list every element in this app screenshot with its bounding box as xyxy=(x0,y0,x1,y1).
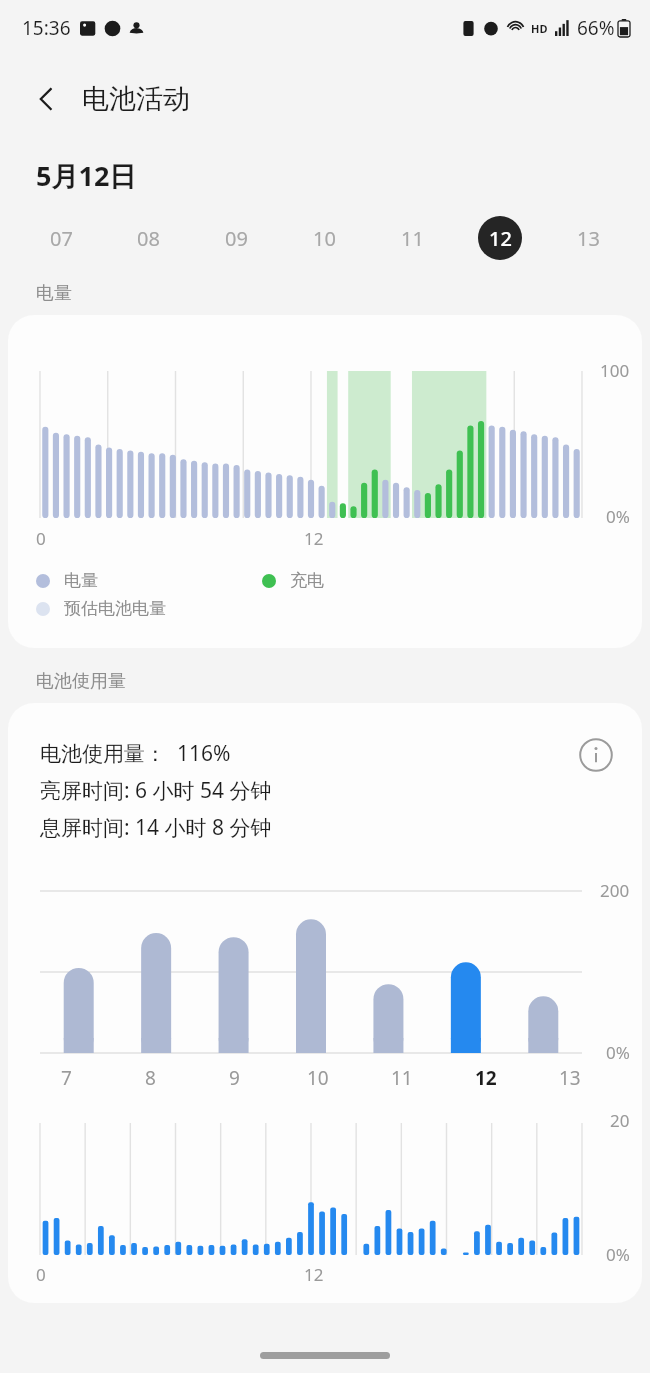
button[interactable]: Back xyxy=(22,75,70,123)
staticText: 息屏时间: 14 小时 8 分钟 xyxy=(40,813,272,842)
staticText: 09 xyxy=(225,225,248,252)
staticText: 电池使用量： 116% xyxy=(40,739,231,768)
staticText: 15:36 xyxy=(22,15,71,41)
staticText: 08 xyxy=(137,225,160,252)
staticText: 10 xyxy=(313,225,336,252)
staticText: 12 xyxy=(475,1065,497,1091)
staticText: 0 xyxy=(36,527,46,550)
staticText: 0% xyxy=(606,1243,630,1266)
staticText: 5月12日 xyxy=(36,157,137,194)
button[interactable]: 10 xyxy=(280,208,368,268)
staticText: 20 xyxy=(610,1109,630,1132)
button[interactable]: 07 xyxy=(18,208,105,268)
button[interactable]: 08 xyxy=(105,208,192,268)
staticText: 0% xyxy=(606,505,630,528)
staticText: 9 xyxy=(229,1065,240,1091)
staticText: 10 xyxy=(307,1065,329,1091)
staticText: 电量 xyxy=(36,282,72,305)
staticText: 13 xyxy=(577,225,600,252)
staticText: 7 xyxy=(61,1065,72,1091)
button[interactable]: 12 xyxy=(456,208,544,268)
button[interactable]: 09 xyxy=(192,208,280,268)
button[interactable]: 11 xyxy=(368,208,456,268)
staticText: 100 xyxy=(600,359,630,382)
staticText: 07 xyxy=(50,225,73,252)
staticText: 12 xyxy=(304,527,324,550)
staticText: 预估电池电量 xyxy=(64,598,166,619)
staticText: 电量 xyxy=(64,570,98,591)
staticText: 电池使用量 xyxy=(36,670,126,693)
staticText: 11 xyxy=(401,225,424,252)
staticText: 0% xyxy=(606,1041,630,1064)
staticText: 11 xyxy=(391,1065,413,1091)
staticText: 电池活动 xyxy=(82,82,190,116)
staticText: 8 xyxy=(145,1065,156,1091)
staticText: 亮屏时间: 6 小时 54 分钟 xyxy=(40,776,272,805)
button[interactable]: Info xyxy=(572,731,620,779)
staticText: 13 xyxy=(559,1065,581,1091)
staticText: 12 xyxy=(304,1263,324,1286)
staticText: 充电 xyxy=(290,570,324,591)
button[interactable]: 13 xyxy=(544,208,632,268)
staticText: 200 xyxy=(600,879,630,902)
staticText: 12 xyxy=(489,225,512,252)
staticText: 0 xyxy=(36,1263,46,1286)
staticText: HD xyxy=(531,21,548,36)
staticText: 66% xyxy=(577,15,615,41)
